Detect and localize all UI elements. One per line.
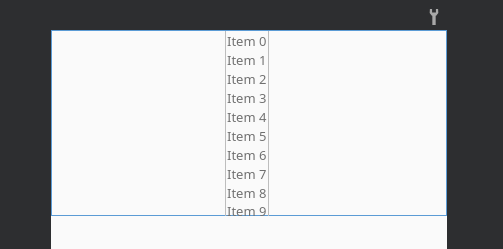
staticText: Item 3 [227,89,267,107]
button[interactable]: Item 9 [225,202,269,216]
button[interactable]: Item 8 [225,183,269,202]
button[interactable]: Settings [423,4,445,28]
staticText: Item 5 [227,127,267,145]
button[interactable]: Item 6 [225,145,269,164]
staticText: Item 7 [227,165,267,183]
staticText: Item 1 [227,51,267,69]
staticText: Item 8 [227,184,267,202]
button[interactable]: Item 4 [225,107,269,126]
button[interactable]: Item 2 [225,69,269,88]
staticText: Item 0 [227,32,267,50]
staticText: Item 4 [227,108,267,126]
staticText: Item 2 [227,70,267,88]
button[interactable]: Item 1 [225,50,269,69]
button[interactable]: Item 5 [225,126,269,145]
staticText: Item 6 [227,146,267,164]
staticText: Item 9 [227,202,267,216]
button[interactable]: Item 3 [225,88,269,107]
button[interactable]: Item 7 [225,164,269,183]
button[interactable]: Item 0 [225,31,269,50]
